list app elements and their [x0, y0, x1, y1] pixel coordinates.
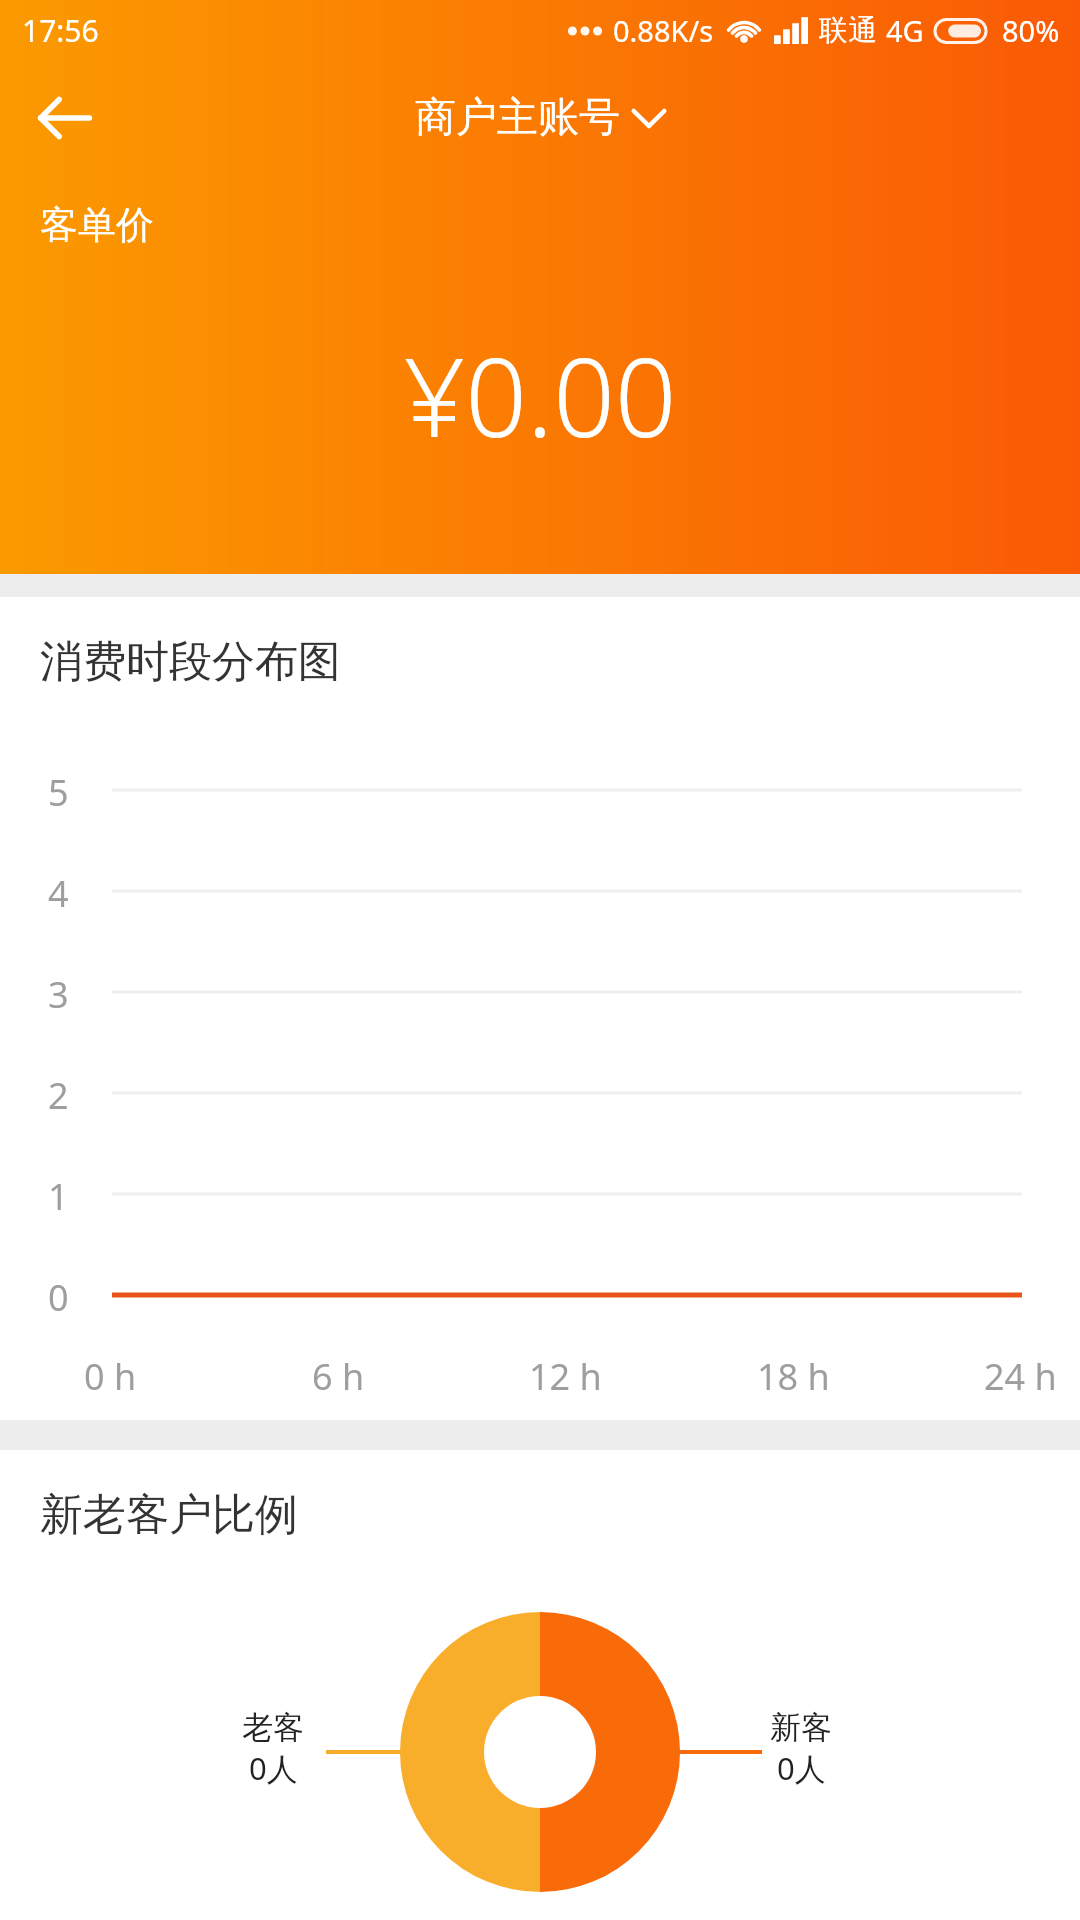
staticText: 新老客户比例: [40, 1488, 298, 1542]
staticText: 24 h: [984, 1352, 1057, 1401]
staticText: 5: [48, 768, 69, 817]
staticText: 3: [48, 970, 69, 1019]
button[interactable]: 商户主账号: [403, 84, 678, 152]
staticText: 80%: [1002, 11, 1060, 50]
staticText: 18 h: [757, 1352, 830, 1401]
staticText: 17:56: [22, 10, 99, 51]
staticText: 老客: [242, 1708, 304, 1747]
staticText: 消费时段分布图: [40, 635, 341, 689]
staticText: 4G: [886, 11, 924, 50]
staticText: 2: [48, 1071, 69, 1120]
staticText: 1: [48, 1172, 69, 1221]
staticText: 0: [48, 1273, 69, 1322]
staticText: 新客: [770, 1708, 832, 1747]
staticText: 6 h: [312, 1352, 365, 1401]
staticText: 4: [48, 869, 69, 918]
staticText: 0 h: [84, 1352, 137, 1401]
staticText: 0人: [249, 1747, 298, 1789]
staticText: 联通: [819, 12, 877, 49]
staticText: 0.88K/s: [613, 11, 714, 50]
staticText: 客单价: [40, 201, 154, 249]
staticText: 商户主账号: [415, 92, 620, 144]
staticText: 12 h: [529, 1352, 602, 1401]
staticText: ¥0.00: [403, 322, 677, 469]
button[interactable]: 返回: [20, 73, 110, 163]
staticText: 0人: [777, 1747, 826, 1789]
